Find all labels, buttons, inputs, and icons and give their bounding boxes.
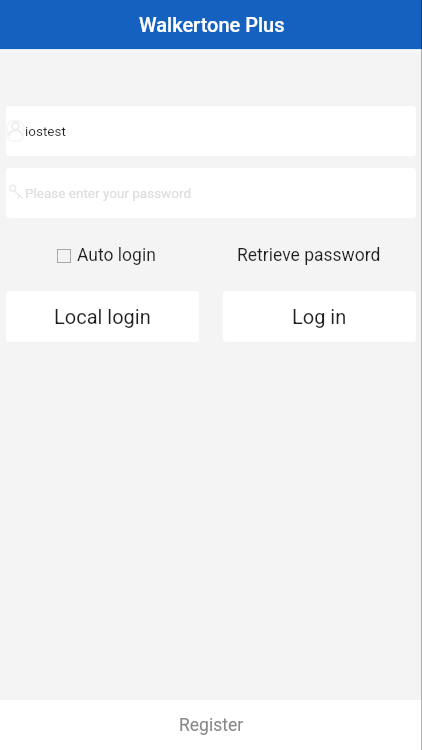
button[interactable]: User: [6, 106, 416, 156]
staticText: Auto login: [77, 245, 156, 266]
button[interactable]: Retrieve password: [232, 241, 386, 270]
staticText: Please enter your password: [25, 185, 192, 201]
staticText: Local login: [54, 305, 151, 328]
button[interactable]: Local login: [6, 291, 199, 342]
staticText: Retrieve password: [237, 245, 381, 266]
staticText: Walkertone Plus: [139, 13, 285, 36]
staticText: Register: [179, 715, 244, 736]
staticText: Log in: [292, 305, 347, 328]
button[interactable]: Log in: [223, 291, 416, 342]
button[interactable]: Register: [0, 700, 422, 750]
other: User: [7, 120, 24, 142]
other: Password: [7, 182, 24, 204]
button[interactable]: Auto login: [51, 241, 162, 270]
staticText: iostest: [25, 123, 66, 139]
button[interactable]: Password: [6, 168, 416, 218]
